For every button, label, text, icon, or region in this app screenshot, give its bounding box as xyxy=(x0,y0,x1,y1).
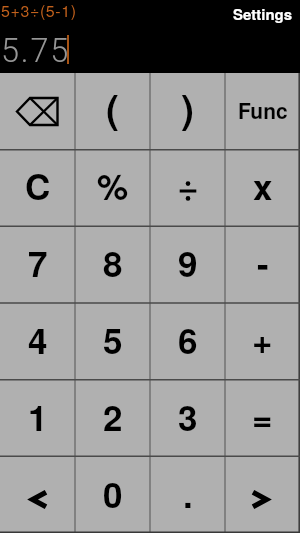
staticText: 1 xyxy=(28,392,48,442)
button[interactable]: 6 xyxy=(150,302,225,379)
staticText: ( xyxy=(106,79,119,135)
button[interactable] xyxy=(225,456,300,533)
staticText: 3 xyxy=(178,392,198,442)
staticText: + xyxy=(252,315,273,365)
staticText: 8 xyxy=(103,238,123,288)
button[interactable]: Settings xyxy=(233,0,300,24)
staticText: . xyxy=(183,469,193,519)
button[interactable]: ( xyxy=(75,73,150,149)
button[interactable] xyxy=(0,456,75,533)
staticText: 5+3÷(5-1) xyxy=(1,0,77,22)
button[interactable]: x xyxy=(225,149,300,225)
button[interactable]: 5 xyxy=(75,302,150,379)
button[interactable]: 0 xyxy=(75,456,150,533)
button[interactable]: Func xyxy=(225,73,300,149)
button[interactable]: . xyxy=(150,456,225,533)
button[interactable]: 8 xyxy=(75,225,150,302)
button[interactable]: 1 xyxy=(0,379,75,456)
staticText: C xyxy=(25,161,51,211)
button[interactable]: 9 xyxy=(150,225,225,302)
staticText: 2 xyxy=(103,392,123,442)
staticText: 4 xyxy=(28,315,48,365)
staticText: 6 xyxy=(178,315,198,365)
staticText: 5 xyxy=(103,315,123,365)
staticText: 5.75 xyxy=(1,32,71,70)
staticText: Func xyxy=(238,95,288,125)
button[interactable]: 4 xyxy=(0,302,75,379)
button[interactable] xyxy=(0,73,75,149)
staticText: ) xyxy=(181,79,194,135)
staticText: x xyxy=(253,161,273,211)
button[interactable]: 2 xyxy=(75,379,150,456)
button[interactable]: + xyxy=(225,302,300,379)
button[interactable] xyxy=(150,149,225,225)
button[interactable]: ) xyxy=(150,73,225,149)
staticText: % xyxy=(97,161,129,211)
button[interactable]: C xyxy=(0,149,75,225)
staticText: 0 xyxy=(103,469,123,519)
staticText: 7 xyxy=(28,238,48,288)
button[interactable]: 3 xyxy=(150,379,225,456)
staticText: - xyxy=(257,238,269,288)
button[interactable]: - xyxy=(225,225,300,302)
staticText: 9 xyxy=(178,238,198,288)
staticText: = xyxy=(252,392,273,442)
button[interactable]: = xyxy=(225,379,300,456)
button[interactable]: 7 xyxy=(0,225,75,302)
button[interactable]: % xyxy=(75,149,150,225)
staticText: Settings xyxy=(233,3,293,24)
